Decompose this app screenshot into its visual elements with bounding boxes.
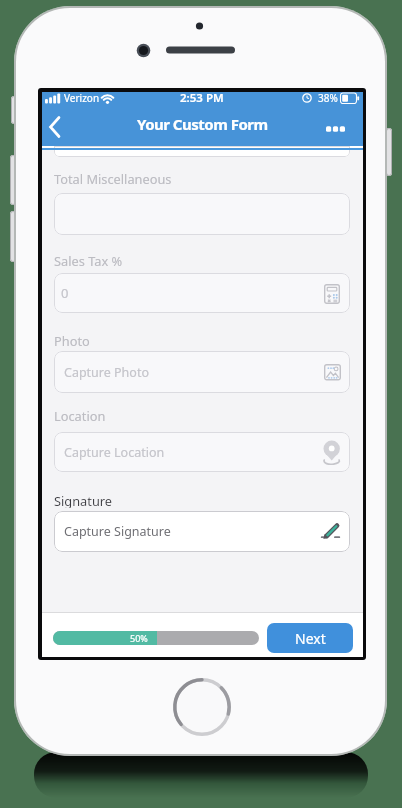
staticText: Photo [54,332,90,348]
button[interactable] [54,432,350,472]
staticText: 38% [318,91,338,105]
staticText: Location [54,407,106,423]
button[interactable] [173,678,231,736]
button[interactable] [54,351,350,393]
button[interactable] [54,193,350,235]
staticText: 2:53 PM [180,90,224,105]
button[interactable] [54,511,350,552]
staticText: Capture Photo [64,364,149,381]
button[interactable] [54,273,350,313]
staticText: Sales Tax % [54,252,123,268]
button[interactable] [42,112,68,142]
staticText: Capture Location [64,444,165,461]
staticText: 0 [61,284,69,302]
button[interactable]: Next [267,623,353,653]
staticText: Total Miscellaneous [54,170,172,186]
staticText: Verizon [64,91,100,105]
staticText: Signature [54,492,113,508]
staticText: 50% [130,632,148,644]
staticText: Next [295,629,326,648]
staticText: Capture Signature [64,523,171,540]
button[interactable] [322,120,350,137]
staticText: Your Custom Form [137,114,268,134]
